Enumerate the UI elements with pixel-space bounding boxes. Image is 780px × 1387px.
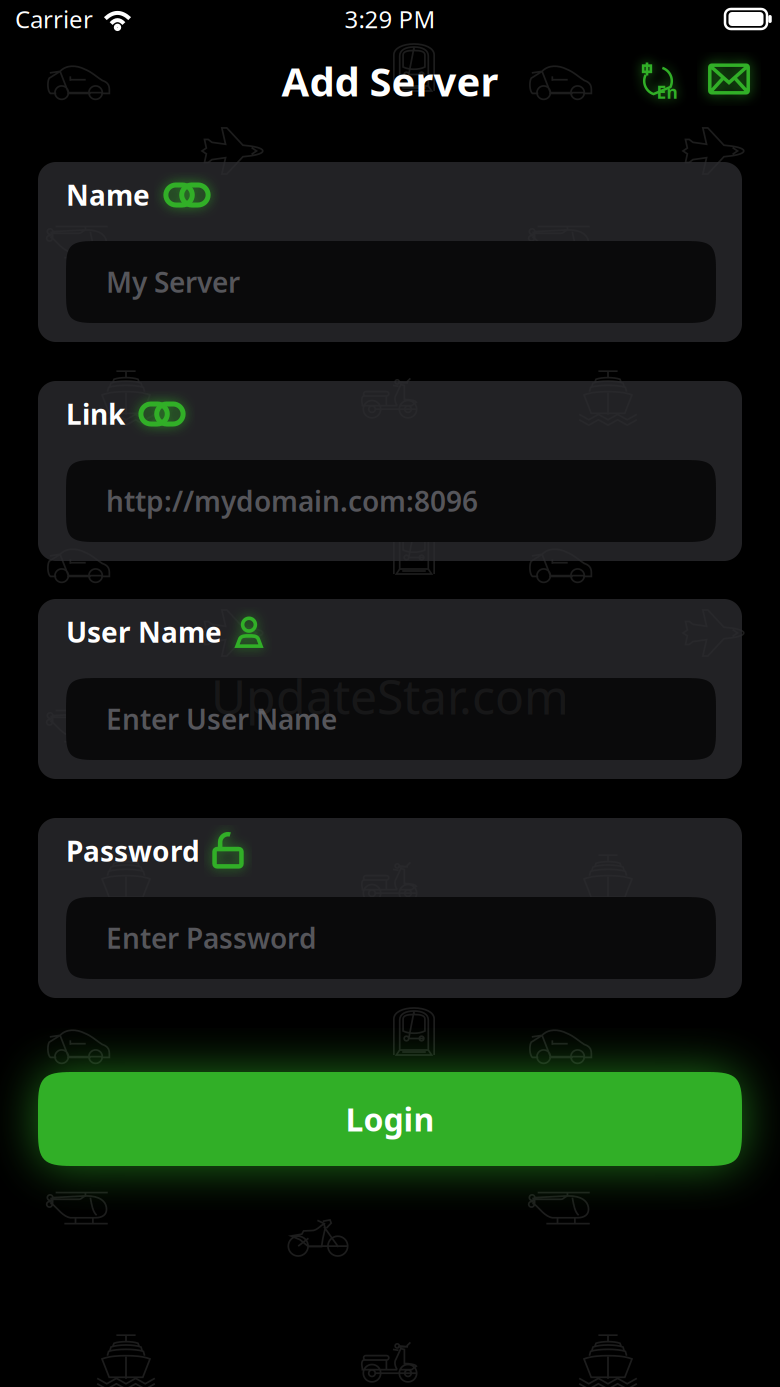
staticText: My Server xyxy=(106,263,240,301)
staticText: Login xyxy=(345,1098,434,1140)
staticText: Add Server xyxy=(281,54,498,107)
staticText: En xyxy=(656,80,677,103)
button[interactable]: Translate xyxy=(631,54,683,106)
staticText: Enter Password xyxy=(106,919,317,957)
staticText: Carrier xyxy=(15,3,93,35)
staticText: Name xyxy=(66,176,150,214)
staticText: 3:29 PM xyxy=(344,3,435,35)
staticText: Enter User Name xyxy=(106,700,337,738)
staticText: User Name xyxy=(66,613,222,651)
staticText: UpdateStar.com xyxy=(211,664,569,728)
staticText: Link xyxy=(66,395,125,433)
staticText: http://mydomain.com:8096 xyxy=(106,482,478,520)
staticText: Password xyxy=(66,832,200,870)
button[interactable]: Mail xyxy=(703,53,755,105)
button[interactable]: Login xyxy=(38,1072,742,1166)
